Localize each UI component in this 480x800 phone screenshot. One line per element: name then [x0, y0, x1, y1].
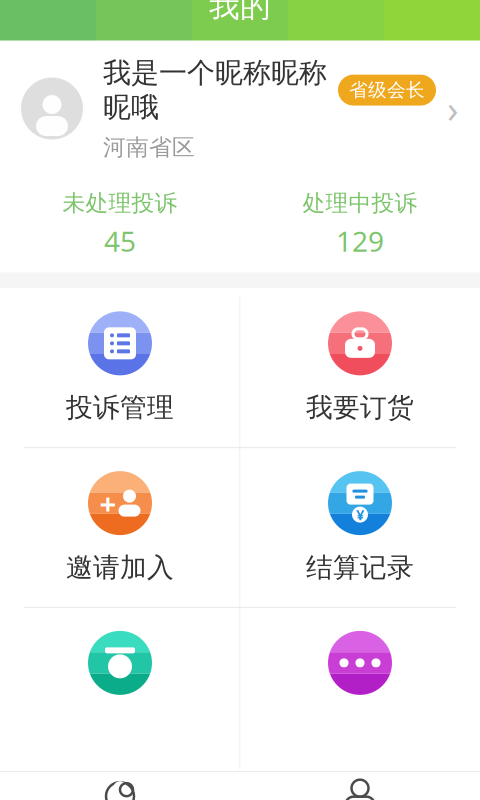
button[interactable] — [240, 608, 480, 769]
staticText: › — [447, 84, 459, 133]
button[interactable]: ¥ — [240, 448, 480, 607]
staticText: 129 — [336, 222, 384, 259]
staticText: 我要订货 — [306, 391, 414, 424]
button[interactable]: 我是一个昵称昵称昵哦 — [0, 41, 480, 176]
staticText: 45 — [104, 222, 136, 259]
staticText: 我是一个昵称昵称昵哦 — [103, 56, 327, 124]
staticText: 处理中投诉 — [302, 189, 417, 217]
staticText: 河南省区 — [103, 133, 195, 161]
staticText: 邀请加入 — [66, 551, 174, 584]
staticText: 未处理投诉 — [62, 189, 177, 217]
staticText: 我的 — [209, 0, 271, 25]
button[interactable]: 未处理投诉 — [0, 176, 240, 272]
button[interactable]: 我的 — [240, 772, 480, 800]
staticText: + — [99, 484, 116, 523]
staticText: 省级会长 — [349, 79, 425, 101]
button[interactable]: 收益 — [0, 772, 240, 800]
button[interactable]: + — [0, 448, 240, 607]
button[interactable]: 处理中投诉 — [240, 176, 480, 272]
button[interactable]: 投诉管理 — [0, 288, 240, 447]
button[interactable] — [0, 608, 240, 769]
button[interactable]: 我要订货 — [240, 288, 480, 447]
staticText: 结算记录 — [306, 551, 414, 584]
staticText: 投诉管理 — [66, 391, 174, 424]
staticText: ¥ — [356, 505, 364, 524]
